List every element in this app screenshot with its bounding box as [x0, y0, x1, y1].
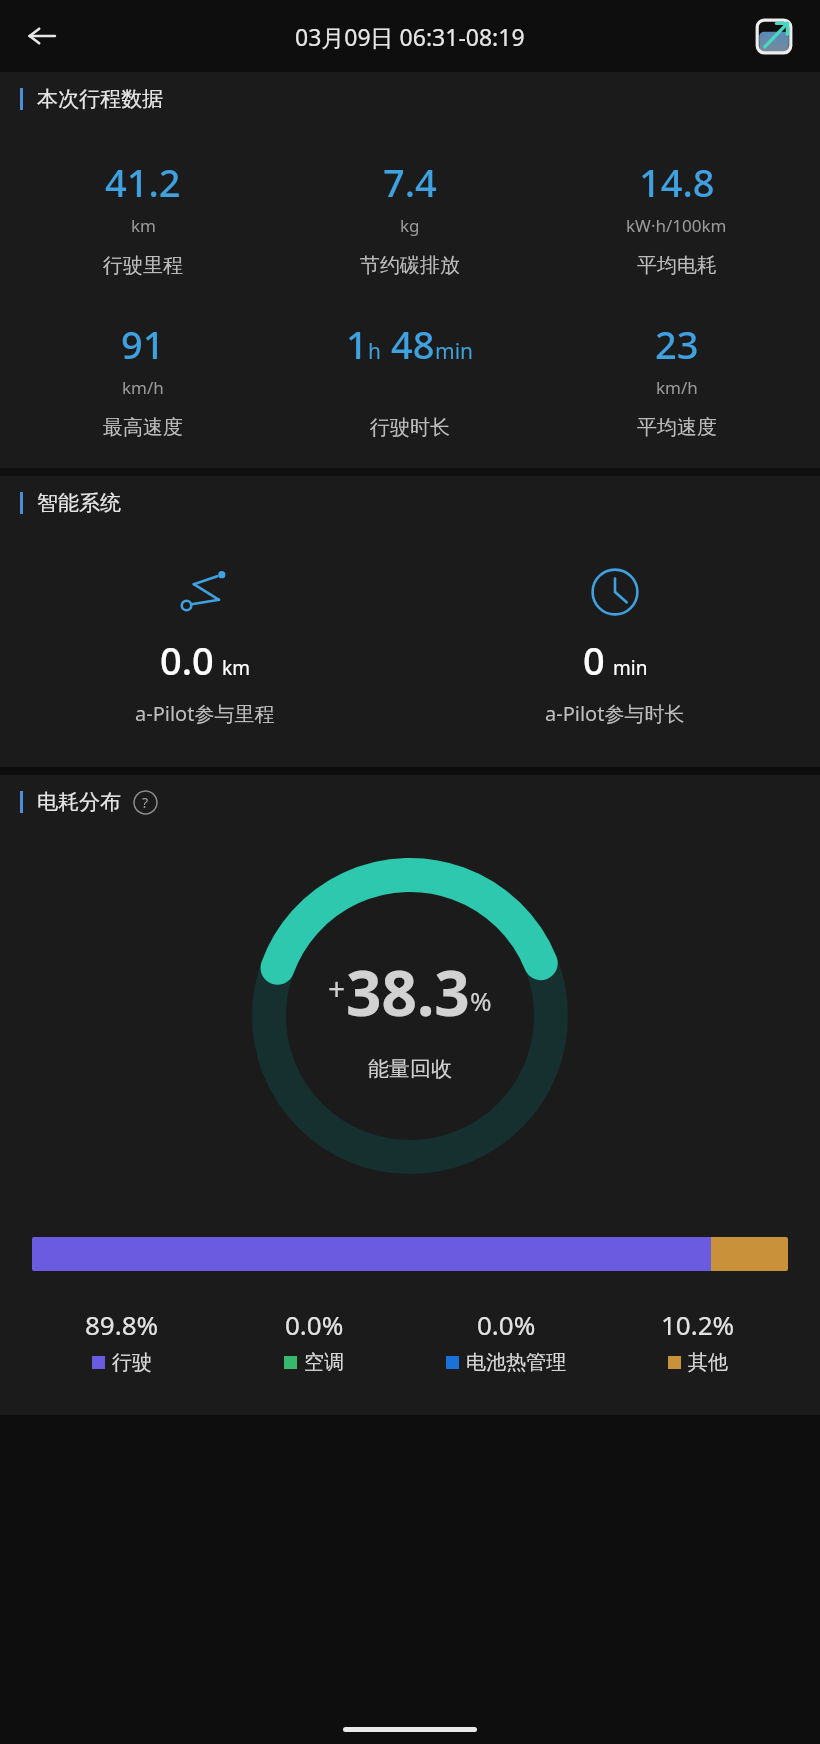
- staticText: 平均电耗: [637, 253, 717, 278]
- staticText: 节约碳排放: [360, 253, 460, 278]
- staticText: km/h: [656, 376, 698, 399]
- staticText: 10.2%: [661, 1307, 735, 1342]
- staticText: 0.0%: [285, 1307, 344, 1342]
- staticText: min: [435, 337, 474, 366]
- staticText: 41.2: [105, 156, 181, 208]
- staticText: km/h: [122, 376, 164, 399]
- staticText: 91: [121, 318, 165, 370]
- staticText: min: [613, 655, 648, 681]
- staticText: 平均速度: [637, 415, 717, 440]
- staticText: 48: [391, 318, 435, 370]
- staticText: 23: [655, 318, 699, 370]
- staticText: 1: [346, 318, 368, 370]
- staticText: 电池热管理: [466, 1350, 566, 1375]
- staticText: 89.8%: [85, 1307, 159, 1342]
- staticText: 空调: [304, 1350, 344, 1375]
- staticText: 智能系统: [37, 490, 121, 516]
- staticText: kW·h/100km: [626, 214, 727, 237]
- staticText: 电耗分布: [37, 789, 121, 815]
- staticText: kg: [400, 214, 420, 237]
- staticText: 行驶时长: [370, 415, 450, 440]
- button[interactable]: Help: [133, 790, 158, 815]
- staticText: 能量回收: [368, 1056, 452, 1082]
- staticText: +: [328, 968, 346, 1009]
- button[interactable]: Share: [750, 12, 798, 60]
- staticText: 本次行程数据: [37, 86, 163, 112]
- staticText: 0: [583, 634, 605, 686]
- staticText: 0.0%: [477, 1307, 536, 1342]
- button[interactable]: Back: [20, 14, 64, 58]
- staticText: 03月09日 06:31-08:19: [295, 21, 525, 52]
- staticText: 7.4: [383, 156, 437, 208]
- staticText: 行驶: [112, 1350, 152, 1375]
- staticText: 14.8: [639, 156, 715, 208]
- staticText: km: [222, 655, 250, 681]
- staticText: 38.3: [346, 950, 470, 1034]
- staticText: h: [368, 337, 381, 366]
- staticText: 最高速度: [103, 415, 183, 440]
- staticText: a-Pilot参与时长: [545, 700, 685, 727]
- staticText: ?: [142, 793, 149, 812]
- staticText: %: [470, 983, 492, 1018]
- staticText: 行驶里程: [103, 253, 183, 278]
- staticText: km: [131, 214, 156, 237]
- staticText: 其他: [688, 1350, 728, 1375]
- staticText: a-Pilot参与里程: [135, 700, 275, 727]
- staticText: 0.0: [160, 634, 214, 686]
